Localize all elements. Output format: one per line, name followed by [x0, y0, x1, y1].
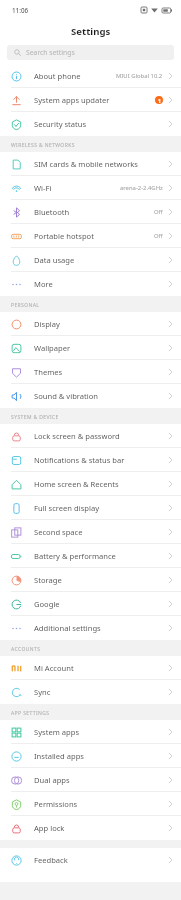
staticText: Sound & vibration: [34, 391, 168, 401]
staticText: Battery & performance: [34, 551, 168, 561]
staticText: Sync: [34, 687, 168, 697]
button[interactable]: Feedback: [0, 848, 181, 872]
button[interactable]: SIM cards & mobile networks: [0, 152, 181, 176]
staticText: About phone: [34, 71, 116, 81]
button[interactable]: Additional settings: [0, 616, 181, 640]
staticText: 11:06: [12, 6, 29, 15]
staticText: WIRELESS & NETWORKS: [11, 142, 75, 149]
staticText: Search settings: [26, 48, 75, 57]
button[interactable]: System apps updater: [0, 88, 181, 112]
staticText: Data usage: [34, 255, 168, 265]
button[interactable]: Mi Account: [0, 656, 181, 680]
staticText: Google: [34, 599, 168, 609]
staticText: 1: [158, 97, 161, 104]
staticText: Full screen display: [34, 503, 168, 513]
button[interactable]: Data usage: [0, 248, 181, 272]
staticText: Lock screen & password: [34, 431, 168, 441]
staticText: MIUI Global 10.2: [116, 72, 163, 80]
staticText: Settings: [71, 25, 111, 38]
staticText: More: [34, 279, 168, 289]
staticText: System apps updater: [34, 95, 155, 105]
staticText: Permissions: [34, 799, 168, 809]
button[interactable]: More: [0, 272, 181, 296]
button[interactable]: Notifications & status bar: [0, 448, 181, 472]
staticText: Themes: [34, 367, 168, 377]
button[interactable]: Storage: [0, 568, 181, 592]
button[interactable]: Full screen display: [0, 496, 181, 520]
button[interactable]: Bluetooth: [0, 200, 181, 224]
button[interactable]: Home screen & Recents: [0, 472, 181, 496]
button[interactable]: Sync: [0, 680, 181, 704]
staticText: Off: [154, 208, 163, 216]
staticText: Security status: [34, 119, 168, 129]
staticText: APP SETTINGS: [11, 710, 50, 717]
button[interactable]: Lock screen & password: [0, 424, 181, 448]
button[interactable]: Wi-Fi: [0, 176, 181, 200]
button[interactable]: Security status: [0, 112, 181, 136]
button[interactable]: Permissions: [0, 792, 181, 816]
staticText: Bluetooth: [34, 207, 154, 217]
staticText: SYSTEM & DEVICE: [11, 414, 59, 421]
button[interactable]: System apps: [0, 720, 181, 744]
staticText: Additional settings: [34, 623, 168, 633]
button[interactable]: Display: [0, 312, 181, 336]
button[interactable]: Sound & vibration: [0, 384, 181, 408]
staticText: Storage: [34, 575, 168, 585]
staticText: Display: [34, 319, 168, 329]
button[interactable]: Search settings: [7, 45, 174, 60]
staticText: Dual apps: [34, 775, 168, 785]
button[interactable]: Installed apps: [0, 744, 181, 768]
staticText: Wallpaper: [34, 343, 168, 353]
staticText: Notifications & status bar: [34, 455, 168, 465]
staticText: Wi-Fi: [34, 183, 120, 193]
button[interactable]: Second space: [0, 520, 181, 544]
button[interactable]: About phone: [0, 64, 181, 88]
button[interactable]: Themes: [0, 360, 181, 384]
staticText: App lock: [34, 823, 168, 833]
staticText: Home screen & Recents: [34, 479, 168, 489]
staticText: Second space: [34, 527, 168, 537]
button[interactable]: Google: [0, 592, 181, 616]
staticText: Installed apps: [34, 751, 168, 761]
staticText: arena-2-2.4GHz: [120, 184, 163, 192]
staticText: Portable hotspot: [34, 231, 154, 241]
staticText: PERSONAL: [11, 302, 40, 309]
button[interactable]: Dual apps: [0, 768, 181, 792]
button[interactable]: Battery & performance: [0, 544, 181, 568]
staticText: SIM cards & mobile networks: [34, 159, 168, 169]
button[interactable]: Wallpaper: [0, 336, 181, 360]
staticText: Mi Account: [34, 663, 168, 673]
staticText: ACCOUNTS: [11, 646, 41, 653]
button[interactable]: App lock: [0, 816, 181, 840]
staticText: System apps: [34, 727, 168, 737]
button[interactable]: Portable hotspot: [0, 224, 181, 248]
staticText: Off: [154, 232, 163, 240]
staticText: Feedback: [34, 855, 168, 865]
